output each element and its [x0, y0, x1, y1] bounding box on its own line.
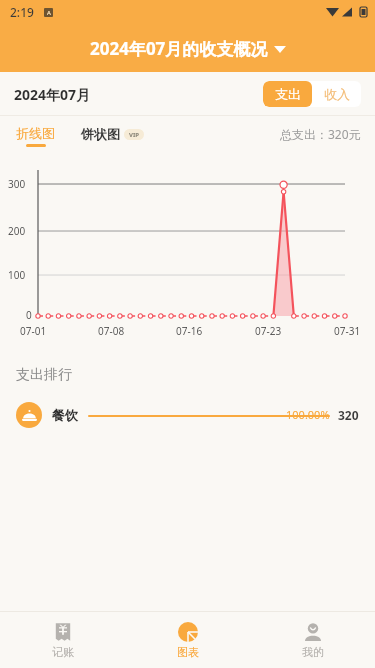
staticText: 我的 — [302, 645, 324, 659]
staticText: 300 — [8, 177, 26, 191]
button[interactable]: 支出 — [263, 81, 312, 107]
staticText: A — [47, 9, 51, 17]
button[interactable]: 饼状图 — [81, 126, 144, 142]
staticText: 100.00% — [286, 407, 330, 422]
staticText: 320 — [338, 407, 359, 423]
staticText: 2:19 — [10, 4, 34, 20]
staticText: 收入 — [324, 86, 350, 102]
staticText: 07-08 — [98, 324, 125, 338]
staticText: 07-16 — [176, 324, 203, 338]
staticText: 支出排行 — [16, 366, 72, 384]
staticText: 100 — [8, 268, 26, 282]
staticText: 折线图 — [16, 125, 55, 141]
button[interactable]: 折线图 — [16, 125, 55, 147]
staticText: 0 — [26, 308, 32, 322]
staticText: 2024年07月 — [14, 85, 91, 104]
staticText: 餐饮 — [52, 407, 78, 423]
staticText: 图表 — [177, 645, 199, 659]
button[interactable]: 图表 — [125, 612, 250, 668]
other: 我的 — [303, 622, 323, 642]
button[interactable]: 记账 — [0, 612, 125, 668]
staticText: 总支出：320元 — [280, 126, 361, 142]
other: 记账 — [53, 622, 73, 642]
button[interactable]: 餐饮 — [16, 402, 359, 428]
staticText: 07-23 — [255, 324, 282, 338]
other: 图表 — [178, 622, 198, 642]
staticText: 2024年07月的收支概况 — [90, 37, 268, 60]
button[interactable]: 收入 — [312, 81, 361, 107]
staticText: VIP — [129, 131, 139, 139]
staticText: 07-31 — [334, 324, 361, 338]
button[interactable]: 2024年07月的收支概况 — [90, 37, 286, 60]
staticText: 支出 — [275, 86, 301, 102]
staticText: 饼状图 — [81, 126, 120, 142]
button[interactable]: 我的 — [250, 612, 375, 668]
staticText: 07-01 — [20, 324, 47, 338]
staticText: 记账 — [52, 645, 74, 659]
staticText: 200 — [8, 224, 26, 238]
